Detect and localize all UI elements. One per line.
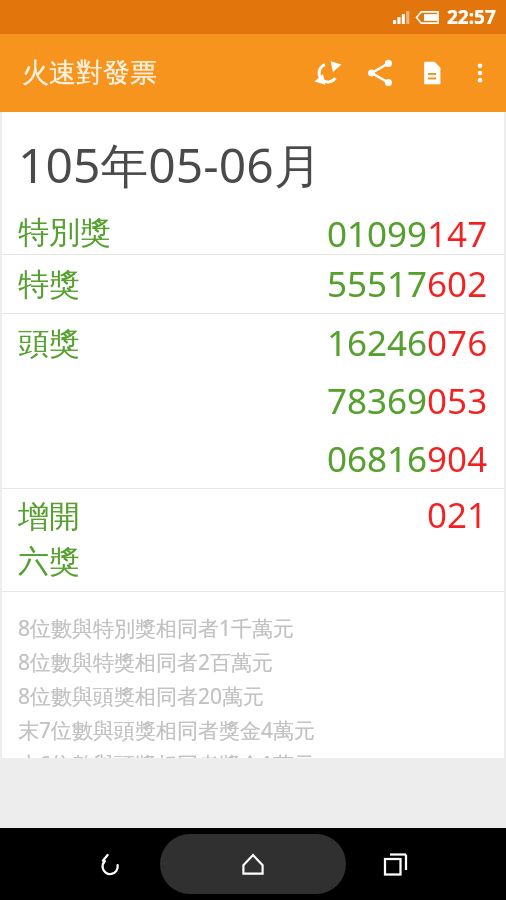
- staticText: 火速對發票: [22, 56, 157, 90]
- staticText: 增開: [18, 497, 80, 536]
- button[interactable]: 增開: [2, 489, 504, 591]
- staticText: 16246076: [327, 319, 488, 367]
- button[interactable]: Back: [86, 839, 136, 889]
- button[interactable]: 特獎: [2, 255, 504, 313]
- button[interactable]: Document: [406, 43, 458, 103]
- staticText: 06816904: [327, 435, 488, 483]
- button[interactable]: Refresh: [302, 43, 354, 103]
- staticText: 末6位數與頭獎相同者獎金1萬元: [18, 750, 316, 758]
- staticText: 01099147: [327, 210, 488, 254]
- button[interactable]: More options: [458, 43, 502, 103]
- staticText: 特別獎: [18, 213, 111, 252]
- staticText: 末7位數與頭獎相同者獎金4萬元: [18, 716, 316, 745]
- staticText: 55517602: [327, 260, 488, 308]
- staticText: 頭獎: [18, 324, 80, 363]
- staticText: 六獎: [18, 542, 80, 581]
- staticText: 特獎: [18, 265, 80, 304]
- button[interactable]: 頭獎: [2, 314, 504, 488]
- staticText: 8位數與頭獎相同者20萬元: [18, 682, 265, 711]
- staticText: 8位數與特獎相同者2百萬元: [18, 648, 274, 677]
- staticText: 021: [427, 491, 488, 539]
- staticText: 8位數與特別獎相同者1千萬元: [18, 614, 295, 643]
- button[interactable]: Home: [160, 834, 346, 894]
- button[interactable]: Recent apps: [370, 839, 420, 889]
- button[interactable]: 特別獎: [2, 210, 504, 254]
- button[interactable]: Share: [354, 43, 406, 103]
- staticText: 78369053: [327, 377, 488, 425]
- staticText: 22:57: [447, 4, 496, 30]
- staticText: 105年05-06月: [18, 132, 322, 198]
